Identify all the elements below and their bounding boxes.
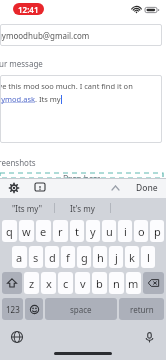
button[interactable]: Voice input: [140, 328, 158, 346]
button[interactable]: p: [150, 220, 164, 242]
staticText: return: [130, 304, 154, 315]
button[interactable]: y: [86, 220, 100, 242]
staticText: Drop here: [63, 173, 101, 178]
button[interactable]: Shift: [2, 272, 22, 294]
button[interactable]: l: [141, 246, 155, 268]
button[interactable]: Backspace: [143, 272, 164, 294]
button[interactable]: s: [29, 246, 43, 268]
staticText: bgymod.ask. Its my: [0, 94, 61, 104]
staticText: m: [128, 276, 139, 291]
button[interactable]: g: [77, 246, 91, 268]
staticText: r: [58, 224, 63, 239]
staticText: v: [80, 276, 86, 291]
staticText: love this mod soo much. I cant find it o…: [0, 81, 133, 91]
button[interactable]: Change keyboard language: [8, 328, 26, 346]
button[interactable]: c: [58, 272, 73, 294]
button[interactable]: Done: [134, 182, 160, 194]
staticText: 123: [6, 304, 20, 315]
staticText: Screenshots: [0, 157, 36, 168]
button[interactable]: Settings: [6, 180, 22, 196]
button[interactable]: b: [92, 272, 107, 294]
other: Shift: [2, 272, 22, 294]
staticText: l: [147, 250, 150, 265]
button[interactable]: space: [45, 298, 117, 320]
button[interactable]: Drop here: [0, 173, 163, 178]
button[interactable]: o: [134, 220, 148, 242]
staticText: "Its my": [12, 203, 42, 214]
button[interactable]: a: [12, 246, 27, 268]
staticText: Your message: [0, 58, 43, 69]
other: Emoji: [25, 298, 43, 320]
staticText: bgymoodhub@gmail.com: [0, 30, 90, 41]
staticText: u: [106, 224, 113, 239]
other: Backspace: [143, 272, 164, 294]
staticText: d: [49, 250, 56, 265]
staticText: c: [63, 276, 69, 291]
button[interactable]: e: [36, 220, 51, 242]
button[interactable]: 123: [2, 298, 23, 320]
staticText: b: [96, 276, 103, 291]
button[interactable]: k: [125, 246, 139, 268]
staticText: t: [75, 224, 79, 239]
staticText: f: [66, 250, 70, 265]
button[interactable]: m: [126, 272, 141, 294]
staticText: y: [90, 224, 96, 239]
staticText: k: [129, 250, 135, 265]
staticText: Done: [136, 182, 158, 194]
staticText: i: [124, 224, 127, 239]
button[interactable]: bgymoodhub@gmail.com: [0, 24, 162, 46]
button[interactable]: It's my: [55, 198, 110, 218]
staticText: 12:41: [18, 4, 39, 15]
button[interactable]: i: [118, 220, 132, 242]
button[interactable]: z: [24, 272, 39, 294]
staticText: o: [138, 224, 145, 239]
staticText: x: [46, 276, 52, 291]
button[interactable]: j: [109, 246, 123, 268]
staticText: h: [97, 250, 104, 265]
button[interactable]: r: [53, 220, 68, 242]
staticText: It's my: [70, 203, 95, 214]
button[interactable]: return: [119, 298, 164, 320]
staticText: a: [16, 250, 23, 265]
button[interactable]: Feedback: [32, 180, 48, 196]
staticText: q: [6, 224, 13, 239]
button[interactable]: v: [75, 272, 90, 294]
staticText: s: [33, 250, 39, 265]
staticText: j: [115, 250, 118, 265]
button[interactable]: h: [93, 246, 107, 268]
button[interactable]: f: [61, 246, 75, 268]
button[interactable]: u: [102, 220, 116, 242]
staticText: w: [22, 224, 31, 239]
staticText: e: [40, 224, 47, 239]
button[interactable]: Previous: [108, 181, 122, 195]
button[interactable]: n: [109, 272, 124, 294]
button[interactable]: d: [45, 246, 59, 268]
button[interactable]: x: [41, 272, 56, 294]
staticText: z: [29, 276, 35, 291]
staticText: g: [81, 250, 88, 265]
button[interactable]: Emoji: [25, 298, 43, 320]
button[interactable]: "Its my": [0, 198, 54, 218]
staticText: space: [70, 304, 92, 315]
staticText: n: [113, 276, 120, 291]
button[interactable]: q: [2, 220, 17, 242]
button[interactable]: t: [70, 220, 84, 242]
staticText: p: [154, 224, 161, 239]
button[interactable]: w: [19, 220, 34, 242]
button[interactable]: love this mod soo much. I cant find it o…: [0, 75, 162, 143]
